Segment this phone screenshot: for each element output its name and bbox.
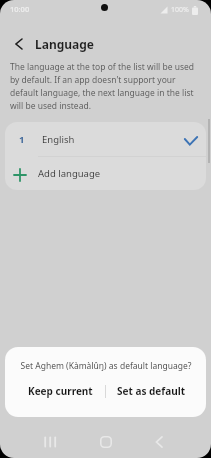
button[interactable]: Keep current [15, 379, 105, 403]
button[interactable] [12, 37, 26, 51]
button[interactable]: Add language [5, 157, 206, 190]
staticText: 1 [19, 133, 25, 146]
staticText: 10:00 [10, 4, 30, 14]
button[interactable]: 1 [5, 122, 206, 156]
button[interactable] [100, 436, 112, 448]
staticText: English [42, 133, 75, 146]
staticText: 100% [171, 5, 189, 15]
staticText: Keep current [28, 384, 93, 398]
staticText: Set Aghem (Kàmàlûŋ) as default language? [20, 360, 192, 372]
staticText: Add language [38, 167, 101, 180]
staticText: Set as default [117, 384, 185, 398]
staticText: Language [35, 36, 95, 52]
button[interactable] [154, 436, 164, 448]
button[interactable] [44, 437, 57, 447]
staticText: The language at the top of the list will… [10, 61, 195, 112]
button[interactable]: Set as default [106, 379, 196, 403]
